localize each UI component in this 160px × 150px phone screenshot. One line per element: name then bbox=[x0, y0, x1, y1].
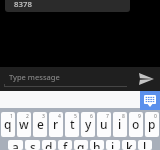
staticText: i bbox=[118, 116, 122, 132]
button[interactable]: s bbox=[25, 140, 40, 150]
button[interactable]: 1 bbox=[1, 112, 15, 137]
staticText: u bbox=[100, 116, 108, 132]
button[interactable]: l bbox=[138, 140, 152, 150]
staticText: l bbox=[143, 140, 147, 149]
button[interactable]: h bbox=[90, 140, 104, 150]
staticText: 9 bbox=[138, 113, 141, 120]
button[interactable]: 8378 bbox=[5, 0, 130, 12]
staticText: o bbox=[132, 116, 140, 132]
staticText: Type message bbox=[9, 72, 60, 82]
staticText: s bbox=[30, 140, 36, 149]
staticText: e bbox=[37, 116, 44, 132]
button[interactable]: 4 bbox=[49, 112, 63, 137]
staticText: 1 bbox=[10, 113, 13, 120]
button[interactable]: 9 bbox=[129, 112, 143, 137]
staticText: q bbox=[4, 116, 12, 132]
button[interactable]: 8 bbox=[113, 112, 127, 137]
staticText: p bbox=[148, 116, 156, 132]
staticText: h bbox=[93, 140, 101, 149]
staticText: 7 bbox=[106, 113, 109, 120]
button[interactable]: 2 bbox=[17, 112, 31, 137]
staticText: 5 bbox=[74, 113, 77, 120]
staticText: 2 bbox=[26, 113, 29, 120]
staticText: k bbox=[126, 140, 133, 149]
staticText: f bbox=[63, 140, 68, 149]
staticText: 8378 bbox=[14, 0, 32, 10]
staticText: w bbox=[19, 116, 29, 132]
staticText: 6 bbox=[90, 113, 93, 120]
staticText: a bbox=[12, 140, 19, 149]
staticText: t bbox=[70, 116, 75, 132]
button[interactable]: 5 bbox=[65, 112, 79, 137]
staticText: r bbox=[53, 116, 59, 132]
button[interactable]: a bbox=[8, 140, 23, 150]
staticText: g bbox=[77, 140, 85, 149]
staticText: 8 bbox=[122, 113, 125, 120]
button[interactable]: 7 bbox=[97, 112, 111, 137]
button[interactable]: j bbox=[106, 140, 120, 150]
button[interactable]: Send bbox=[135, 68, 157, 90]
button[interactable]: 6 bbox=[81, 112, 95, 137]
staticText: 4 bbox=[58, 113, 61, 120]
button[interactable]: 3 bbox=[33, 112, 47, 137]
button[interactable]: Hide keyboard bbox=[140, 91, 160, 110]
staticText: 0 bbox=[154, 113, 157, 120]
button[interactable]: 0 bbox=[145, 112, 159, 137]
button[interactable]: d bbox=[42, 140, 56, 150]
button[interactable]: k bbox=[122, 140, 136, 150]
staticText: j bbox=[111, 140, 115, 149]
button[interactable]: f bbox=[58, 140, 72, 150]
button[interactable]: g bbox=[74, 140, 88, 150]
staticText: d bbox=[45, 140, 53, 149]
staticText: y bbox=[85, 116, 92, 132]
staticText: 3 bbox=[42, 113, 45, 120]
